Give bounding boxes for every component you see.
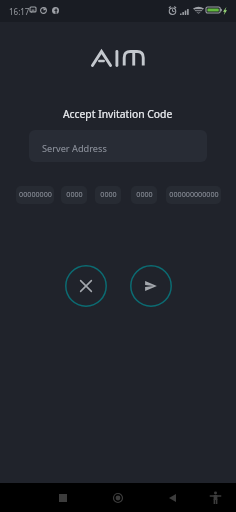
staticText: 0000 (66, 189, 83, 199)
button[interactable]: Cancel (64, 264, 108, 308)
button[interactable]: Home (100, 483, 136, 512)
button[interactable]: 00000000 (16, 186, 54, 204)
button[interactable]: Recents (45, 483, 81, 512)
button[interactable]: Send (129, 264, 173, 308)
staticText: 000000000000 (169, 189, 219, 199)
button[interactable]: 0000 (61, 186, 87, 204)
button[interactable]: Back (154, 483, 190, 512)
button[interactable]: 0000 (131, 186, 157, 204)
button[interactable]: 000000000000 (166, 186, 221, 204)
staticText: Accept Invitation Code (63, 107, 173, 121)
staticText: 0000 (136, 189, 153, 199)
staticText: Server Address (42, 142, 107, 155)
button[interactable]: Server Address (29, 130, 207, 162)
staticText: 16:17 (9, 6, 30, 17)
button[interactable]: 0000 (95, 186, 121, 204)
staticText: 00000000 (19, 189, 52, 199)
staticText: 0000 (100, 189, 117, 199)
button[interactable]: Accessibility (197, 483, 233, 512)
